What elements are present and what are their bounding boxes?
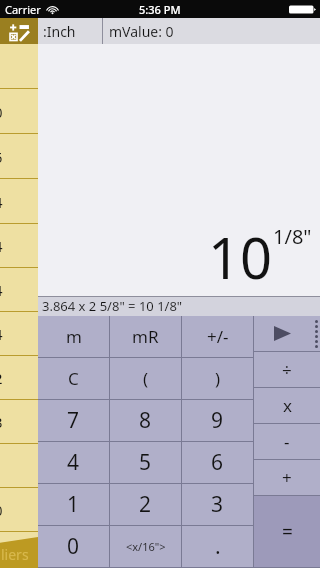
button[interactable]: 1 bbox=[38, 484, 109, 525]
staticText: 7 bbox=[67, 406, 80, 435]
button[interactable]: 4 bbox=[0, 179, 38, 224]
staticText: ( bbox=[143, 367, 149, 390]
button[interactable]: mR bbox=[110, 316, 181, 357]
staticText: x bbox=[283, 394, 292, 417]
staticText: - bbox=[284, 430, 290, 453]
staticText: 10 bbox=[208, 219, 273, 295]
button[interactable]: 5 bbox=[0, 134, 38, 179]
staticText: 4 bbox=[0, 324, 3, 344]
button[interactable]: 4 bbox=[0, 312, 38, 356]
staticText: ÷ bbox=[282, 358, 292, 381]
button[interactable]: . bbox=[182, 526, 253, 567]
staticText: mValue: 0 bbox=[109, 22, 174, 41]
staticText: . bbox=[215, 532, 221, 561]
button[interactable]: liers bbox=[0, 532, 38, 568]
button[interactable]: 8 bbox=[110, 400, 181, 441]
button[interactable]: ( bbox=[110, 358, 181, 399]
button[interactable]: ) bbox=[182, 358, 253, 399]
staticText: 9 bbox=[211, 406, 224, 435]
button[interactable]: 5 bbox=[110, 442, 181, 483]
button[interactable]: - bbox=[254, 424, 320, 459]
button[interactable]: :Inch bbox=[38, 18, 102, 44]
button[interactable]: +/- bbox=[182, 316, 253, 357]
staticText: 0 bbox=[67, 532, 80, 561]
button[interactable]: Calculator bbox=[0, 18, 38, 44]
button[interactable]: 2 bbox=[0, 356, 38, 400]
button[interactable] bbox=[0, 444, 38, 488]
staticText: 6 bbox=[211, 448, 224, 477]
staticText: 4 bbox=[0, 280, 3, 300]
button[interactable]: 2 bbox=[110, 484, 181, 525]
button[interactable]: m bbox=[38, 316, 109, 357]
button[interactable]: r bbox=[0, 44, 38, 89]
staticText: mR bbox=[132, 325, 159, 348]
button[interactable]: Next bbox=[254, 316, 320, 351]
staticText: C bbox=[68, 367, 79, 390]
staticText: + bbox=[282, 466, 292, 489]
staticText: 2 bbox=[139, 490, 152, 519]
staticText: 2 bbox=[0, 368, 3, 388]
button[interactable]: C bbox=[38, 358, 109, 399]
staticText: :Inch bbox=[43, 22, 76, 41]
button[interactable]: 6 bbox=[182, 442, 253, 483]
staticText: ) bbox=[215, 367, 221, 390]
staticText: +/- bbox=[207, 325, 229, 348]
staticText: 0 bbox=[0, 500, 3, 520]
button[interactable]: 0 bbox=[0, 89, 38, 134]
staticText: 3.864 x 2 5/8" = 10 1/8" bbox=[42, 297, 183, 315]
staticText: 5 bbox=[139, 448, 152, 477]
button[interactable]: ÷ bbox=[254, 352, 320, 387]
staticText: 4 bbox=[0, 236, 3, 256]
staticText: <x/16"> bbox=[126, 539, 166, 554]
staticText: 4 bbox=[67, 448, 80, 477]
staticText: 1/8" bbox=[273, 223, 312, 250]
button[interactable]: 7 bbox=[38, 400, 109, 441]
staticText: 0 bbox=[0, 102, 3, 122]
button[interactable]: <x/16"> bbox=[110, 526, 181, 567]
button[interactable]: 0 bbox=[38, 526, 109, 567]
button[interactable]: 0 bbox=[0, 488, 38, 532]
staticText: 8 bbox=[139, 406, 152, 435]
staticText: 1 bbox=[67, 490, 80, 519]
staticText: = bbox=[282, 519, 293, 545]
button[interactable]: 9 bbox=[182, 400, 253, 441]
staticText: 3 bbox=[0, 412, 3, 432]
button[interactable]: 3 bbox=[0, 400, 38, 444]
button[interactable]: mValue: 0 bbox=[103, 18, 320, 44]
staticText: 5 bbox=[0, 147, 3, 167]
staticText: 3 bbox=[211, 490, 224, 519]
staticText: m bbox=[66, 325, 82, 348]
button[interactable]: = bbox=[254, 496, 320, 567]
staticText: Carrier bbox=[5, 2, 41, 17]
button[interactable]: 4 bbox=[38, 442, 109, 483]
staticText: 4 bbox=[0, 192, 3, 212]
staticText: 5:36 PM bbox=[139, 2, 181, 17]
button[interactable]: 4 bbox=[0, 224, 38, 268]
button[interactable]: x bbox=[254, 388, 320, 423]
button[interactable]: 3 bbox=[182, 484, 253, 525]
button[interactable]: 4 bbox=[0, 268, 38, 312]
button[interactable]: + bbox=[254, 460, 320, 495]
staticText: liers bbox=[1, 545, 29, 564]
